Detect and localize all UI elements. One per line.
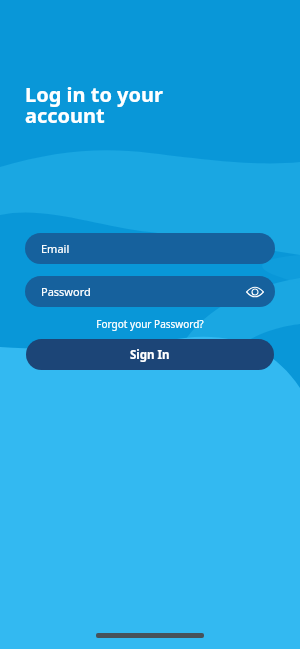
staticText: Forgot your Password? [96, 317, 204, 331]
button[interactable]: Email [25, 233, 275, 264]
button[interactable]: Sign In [26, 339, 274, 370]
staticText: Email [41, 241, 70, 256]
staticText: Sign In [130, 347, 170, 363]
staticText: Password [41, 284, 91, 299]
staticText: Log in to your account [25, 81, 163, 129]
button[interactable]: Forgot your Password? [0, 317, 300, 331]
button[interactable]: Password [25, 276, 275, 307]
